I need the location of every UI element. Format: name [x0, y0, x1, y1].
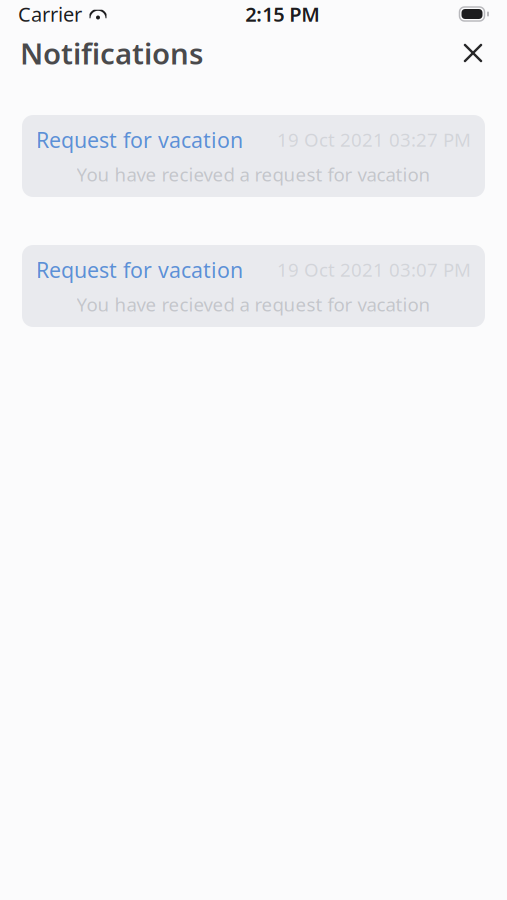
staticText: You have recieved a request for vacation — [76, 162, 430, 187]
button[interactable]: Request for vacation — [22, 115, 485, 197]
staticText: Request for vacation — [36, 125, 243, 154]
staticText: Request for vacation — [36, 255, 243, 284]
staticText: You have recieved a request for vacation — [76, 292, 430, 317]
staticText: 19 Oct 2021 03:07 PM — [277, 257, 471, 282]
button[interactable]: Close — [451, 31, 495, 75]
staticText: Notifications — [20, 33, 203, 72]
staticText: 2:15 PM — [245, 1, 320, 27]
staticText: 19 Oct 2021 03:27 PM — [277, 127, 471, 152]
button[interactable]: Request for vacation — [22, 245, 485, 327]
staticText: Carrier — [18, 1, 82, 27]
